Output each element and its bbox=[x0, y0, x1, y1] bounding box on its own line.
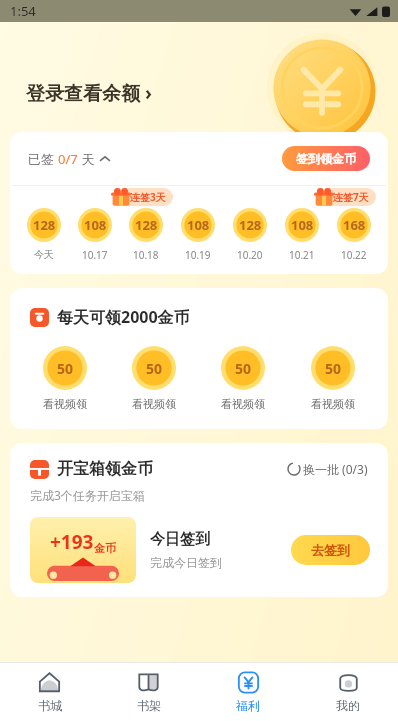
staticText: 已签 bbox=[28, 150, 58, 168]
staticText: 50 bbox=[57, 359, 74, 378]
button[interactable]: 108 bbox=[69, 208, 120, 262]
button[interactable]: 书架 bbox=[99, 663, 198, 721]
button[interactable]: 去签到 bbox=[291, 535, 370, 565]
other: Refresh bbox=[288, 463, 300, 475]
staticText: 去签到 bbox=[311, 542, 350, 558]
staticText: 完成今日签到 bbox=[150, 555, 222, 570]
staticText: 50 bbox=[325, 359, 342, 378]
staticText: 50 bbox=[235, 359, 252, 378]
staticText: 今天 bbox=[34, 248, 54, 261]
button[interactable]: 168 bbox=[328, 208, 380, 262]
staticText: 看视频领 bbox=[132, 397, 176, 411]
staticText: 书架 bbox=[137, 698, 161, 713]
button[interactable]: 福利 bbox=[198, 663, 298, 721]
staticText: 10.19 bbox=[185, 248, 211, 262]
staticText: 看视频领 bbox=[43, 397, 87, 411]
staticText: 10.21 bbox=[289, 248, 315, 262]
staticText: 1:54 bbox=[10, 2, 36, 20]
staticText: 10.18 bbox=[133, 248, 159, 262]
button[interactable]: 128 bbox=[224, 208, 276, 262]
staticText: 10.22 bbox=[341, 248, 367, 262]
staticText: 128 bbox=[33, 216, 56, 234]
staticText: 金币 bbox=[94, 541, 116, 555]
staticText: 168 bbox=[343, 216, 366, 234]
staticText: 108 bbox=[291, 216, 314, 234]
staticText: 连签7天 bbox=[333, 190, 369, 204]
staticText: 108 bbox=[187, 216, 210, 234]
staticText: 看视频领 bbox=[311, 397, 355, 411]
staticText: 开宝箱领金币 bbox=[57, 459, 153, 479]
staticText: 看视频领 bbox=[221, 397, 265, 411]
staticText: 签到领金币 bbox=[296, 151, 356, 166]
staticText: 0/7 bbox=[58, 150, 78, 168]
button[interactable]: 我的 bbox=[298, 663, 398, 721]
staticText: 108 bbox=[84, 216, 107, 234]
button[interactable]: 50 bbox=[288, 346, 378, 411]
button[interactable]: 50 bbox=[109, 346, 198, 411]
button[interactable]: 50 bbox=[20, 346, 109, 411]
staticText: 福利 bbox=[236, 698, 260, 713]
button[interactable]: 108 bbox=[172, 208, 224, 262]
staticText: 天 bbox=[78, 150, 95, 168]
button[interactable]: 登录查看余额 › bbox=[26, 80, 152, 106]
staticText: 我的 bbox=[336, 698, 360, 713]
staticText: 128 bbox=[239, 216, 262, 234]
button[interactable]: 已签 bbox=[28, 150, 110, 168]
button[interactable]: 50 bbox=[198, 346, 288, 411]
button[interactable]: 128 bbox=[120, 208, 172, 262]
button[interactable]: 108 bbox=[276, 208, 328, 262]
staticText: 换一批 (0/3) bbox=[303, 461, 368, 477]
button[interactable]: Refresh bbox=[288, 461, 368, 477]
staticText: 今日签到 bbox=[150, 530, 210, 549]
staticText: +193 bbox=[50, 529, 94, 555]
staticText: 128 bbox=[135, 216, 158, 234]
button[interactable]: +193 bbox=[30, 517, 388, 583]
staticText: 连签3天 bbox=[130, 190, 166, 204]
staticText: 10.20 bbox=[237, 248, 263, 262]
staticText: 完成3个任务开启宝箱 bbox=[30, 487, 145, 503]
button[interactable]: 128 bbox=[18, 208, 69, 261]
staticText: 50 bbox=[146, 359, 163, 378]
button[interactable]: 书城 bbox=[0, 663, 99, 721]
staticText: 10.17 bbox=[82, 248, 108, 262]
staticText: 每天可领2000金币 bbox=[57, 306, 190, 328]
button[interactable]: 签到领金币 bbox=[282, 146, 370, 171]
staticText: 书城 bbox=[38, 698, 62, 713]
